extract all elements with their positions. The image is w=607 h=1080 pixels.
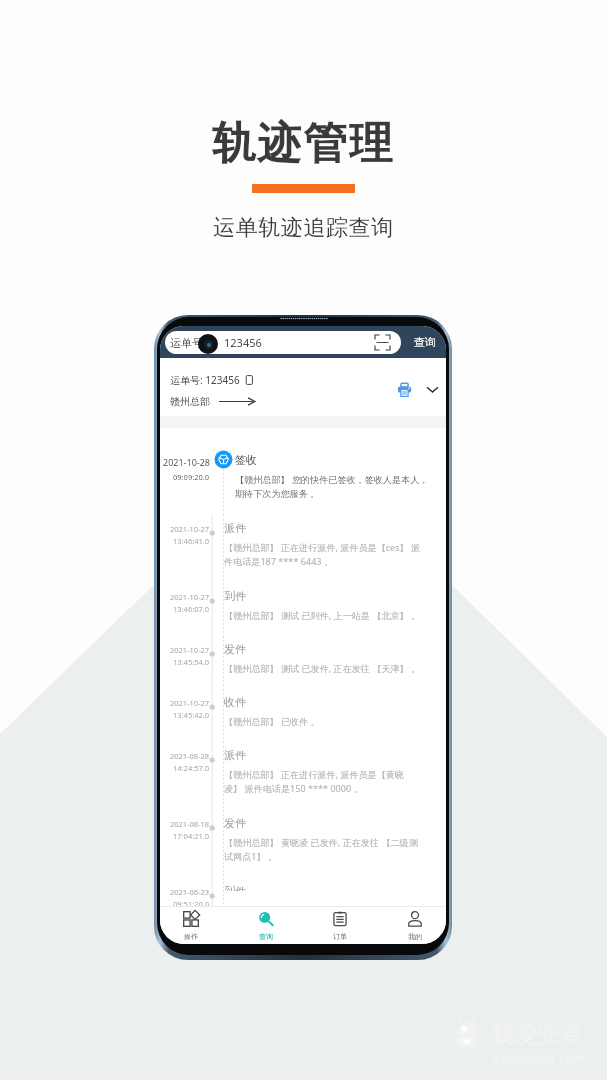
staticText: 09:51:20.0 (173, 899, 210, 906)
staticText: 2021-10-27 (170, 524, 210, 534)
staticText: 2021-08-18 (170, 819, 210, 829)
button[interactable]: 2021-10-28 (160, 428, 446, 515)
staticText: 运单号: 123456 (170, 373, 240, 387)
staticText: 【赣州总部】 正在进行派件, 派件员是【黄晓 凌】 派件电话是150 **** … (224, 768, 404, 795)
button[interactable]: 我的 (392, 907, 438, 944)
staticText: 【赣州总部】 您的快件已签收，签收人是本人，期待下次为您服务 。 (235, 473, 432, 500)
staticText: 13:45:42.0 (173, 710, 210, 720)
staticText: 赣州总部 (170, 395, 210, 408)
button[interactable]: Copy tracking number (245, 375, 255, 385)
staticText: 【赣州总部】 测试 已到件, 上一站是 【北京】 。 (224, 609, 421, 621)
staticText: 14:24:57.0 (173, 763, 210, 773)
staticText: 发件 (224, 816, 246, 830)
staticText: 订单 (333, 932, 347, 941)
staticText: 17:04:21.0 (173, 831, 210, 841)
button[interactable]: 2021-08-28 (160, 742, 446, 810)
staticText: 2021-10-27 (170, 645, 210, 655)
button[interactable]: 查询 (243, 907, 289, 944)
button[interactable]: Scan barcode (375, 335, 390, 350)
staticText: 【赣州总部】 已收件 。 (224, 715, 320, 727)
button[interactable]: 2021-06-23 (160, 878, 446, 906)
staticText: 2021-10-28 (163, 456, 210, 468)
staticText: 13:46:41.0 (173, 536, 210, 546)
staticText: 查询 (414, 335, 436, 349)
staticText: 到件 (224, 589, 246, 603)
button[interactable]: 2021-10-27 (160, 636, 446, 689)
button[interactable]: 2021-10-27 (160, 515, 446, 583)
staticText: 签收 (235, 453, 257, 467)
button[interactable]: 2021-10-27 (160, 689, 446, 742)
button[interactable]: 2021-08-18 (160, 810, 446, 878)
staticText: 发件 (224, 642, 246, 656)
staticText: 2021-06-23 (170, 887, 210, 897)
button[interactable]: Print (397, 382, 412, 397)
staticText: 派件 (224, 748, 246, 762)
staticText: 派件 (224, 521, 246, 535)
staticText: 【赣州总部】 黄晓凌 已发件, 正在发往 【二级测 试网点1】 。 (224, 836, 418, 863)
button[interactable]: 查询 (409, 330, 441, 354)
staticText: 运单轨迹追踪查询 (213, 214, 394, 242)
staticText: 轨迹管理 (212, 116, 395, 171)
staticText: 查询 (259, 932, 273, 941)
staticText: 09:09:20.0 (173, 472, 210, 482)
button[interactable]: 运单号 (165, 331, 401, 354)
staticText: 【赣州总部】 测试 已发件, 正在发往 【天津】 。 (224, 662, 421, 674)
button[interactable]: 操作 (168, 907, 214, 944)
staticText: 运单号 (170, 336, 203, 350)
staticText: 到件 (224, 884, 246, 891)
staticText: 操作 (184, 932, 198, 941)
staticText: 13:46:07.0 (173, 604, 210, 614)
staticText: 我的 (408, 932, 422, 941)
button[interactable]: Expand (426, 383, 439, 396)
staticText: 2021-10-27 (170, 698, 210, 708)
button[interactable]: 订单 (317, 907, 363, 944)
staticText: 123456 (224, 335, 262, 350)
staticText: 2021-10-27 (170, 592, 210, 602)
button[interactable]: 2021-10-27 (160, 583, 446, 636)
staticText: 13:45:54.0 (173, 657, 210, 667)
staticText: 2021-08-28 (170, 751, 210, 761)
staticText: 收件 (224, 695, 246, 709)
staticText: 【赣州总部】 正在进行派件, 派件员是【ces】 派件电话是187 **** 6… (224, 541, 427, 568)
